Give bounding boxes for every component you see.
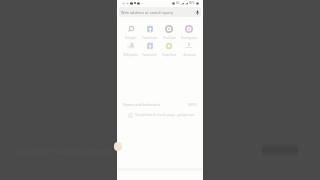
staticText: Google Search results page - google.com [135,113,195,117]
staticText: 4G [176,1,180,5]
button[interactable]: Facebook [140,42,159,57]
staticText: Facebook [142,36,157,40]
button[interactable]: Amazon [179,42,199,57]
button[interactable]: Google [121,25,140,40]
button[interactable]: Facebook [140,25,159,40]
button[interactable]: YouTube [159,25,179,40]
staticText: 85% [189,1,195,5]
staticText: Wikipedia [123,53,138,57]
button[interactable]: Web address or search query [119,7,201,17]
button[interactable]: Google Search results page - google.com [128,111,197,119]
button[interactable]: Wikipedia [121,42,140,57]
other: Voice search [196,10,199,15]
staticText: YouTube [163,36,176,40]
button[interactable]: Snapchat [159,42,179,57]
staticText: History and bookmarks [123,102,161,107]
staticText: Amazon [183,53,196,57]
staticText: MORE [188,103,197,107]
staticText: ... [141,1,144,5]
staticText: Facebook [142,53,157,57]
staticText: Google [125,36,136,40]
staticText: Snapchat [162,53,176,57]
staticText: Web address or search query [121,10,173,15]
button[interactable]: Instagram [179,25,199,40]
staticText: Instagram [181,36,197,40]
